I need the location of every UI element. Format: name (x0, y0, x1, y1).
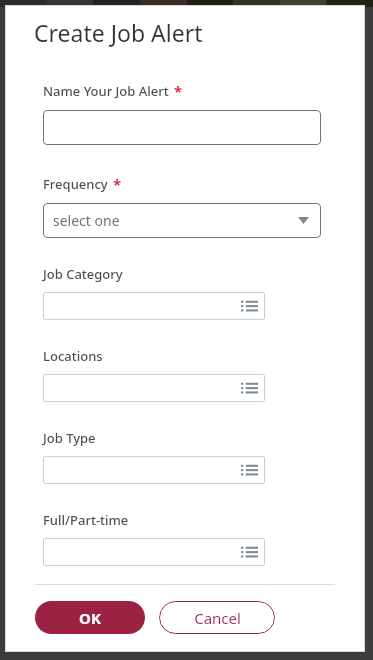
button[interactable] (43, 538, 265, 566)
staticText: * (174, 81, 183, 101)
staticText: Full/Part-time (43, 511, 129, 529)
staticText: Name Your Job Alert (43, 82, 169, 100)
staticText: * (113, 174, 122, 194)
button[interactable]: select one (43, 203, 321, 238)
staticText: Create Job Alert (34, 17, 203, 48)
staticText: Frequency (43, 175, 108, 193)
button[interactable]: Cancel (159, 601, 275, 634)
button[interactable] (43, 374, 265, 402)
button[interactable] (43, 292, 265, 320)
button[interactable]: OK (35, 601, 145, 634)
staticText: Cancel (194, 608, 241, 628)
button[interactable] (43, 456, 265, 484)
staticText: Job Type (43, 429, 96, 447)
button[interactable] (43, 110, 321, 145)
staticText: select one (53, 211, 120, 230)
staticText: OK (79, 608, 101, 628)
staticText: Job Category (43, 265, 123, 283)
staticText: Locations (43, 347, 103, 365)
